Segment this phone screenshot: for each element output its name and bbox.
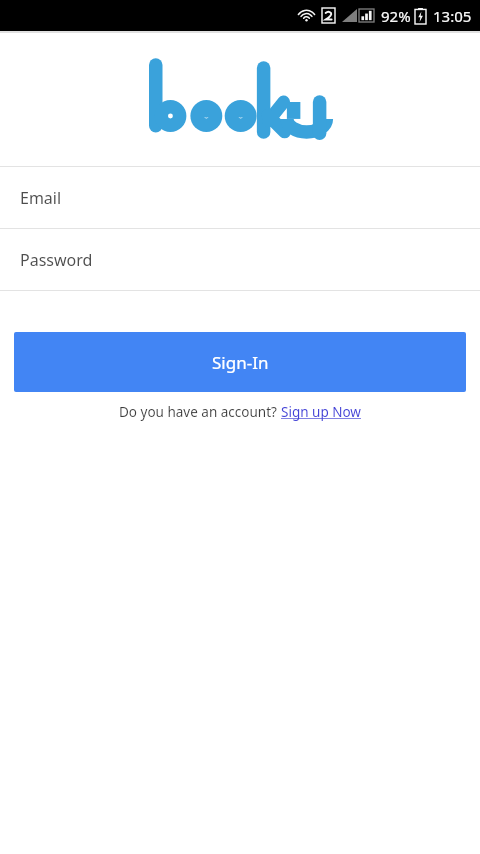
button[interactable]: Password: [0, 229, 480, 290]
button[interactable]: Email: [0, 167, 480, 228]
staticText: Email: [20, 187, 62, 209]
staticText: Do you have an account?: [119, 403, 281, 421]
staticText: 13:05: [433, 6, 472, 26]
button[interactable]: Sign up Now: [281, 403, 361, 421]
staticText: Sign-In: [212, 351, 269, 374]
staticText: Password: [20, 249, 93, 271]
staticText: 92%: [381, 6, 411, 26]
staticText: Sign up Now: [281, 403, 361, 421]
button[interactable]: Sign-In: [14, 332, 466, 392]
